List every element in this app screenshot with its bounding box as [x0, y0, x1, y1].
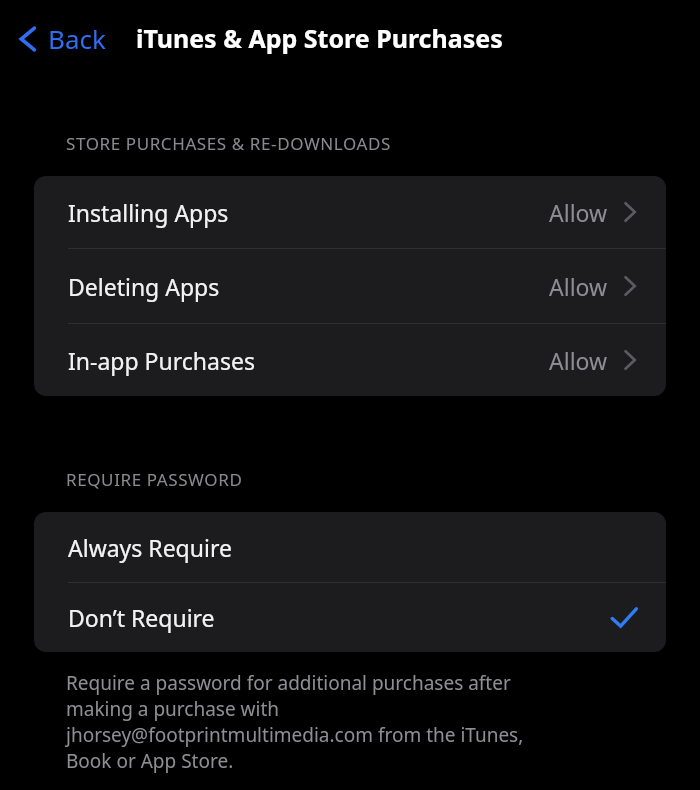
staticText: Don’t Require: [68, 602, 215, 633]
button[interactable]: Installing Apps: [34, 176, 666, 248]
staticText: iTunes & App Store Purchases: [136, 21, 503, 55]
staticText: Book or App Store.: [66, 748, 234, 774]
staticText: Allow: [549, 197, 608, 228]
staticText: Require a password for additional purcha…: [66, 670, 511, 696]
staticText: Back: [48, 21, 106, 56]
button[interactable]: Don’t Require: [34, 583, 666, 652]
staticText: STORE PURCHASES & RE-DOWNLOADS: [66, 132, 391, 155]
staticText: Deleting Apps: [68, 271, 220, 302]
button[interactable]: Deleting Apps: [34, 249, 666, 323]
button[interactable]: Always Require: [34, 512, 666, 582]
button[interactable]: In-app Purchases: [34, 324, 666, 396]
staticText: Always Require: [68, 532, 232, 563]
staticText: REQUIRE PASSWORD: [66, 468, 243, 491]
staticText: Allow: [549, 345, 608, 376]
staticText: jhorsey@footprintmultimedia.com from the…: [66, 722, 524, 748]
button[interactable]: Back: [0, 15, 116, 62]
staticText: Installing Apps: [68, 197, 229, 228]
staticText: making a purchase with: [66, 696, 280, 722]
staticText: Allow: [549, 271, 608, 302]
staticText: In-app Purchases: [68, 345, 255, 376]
